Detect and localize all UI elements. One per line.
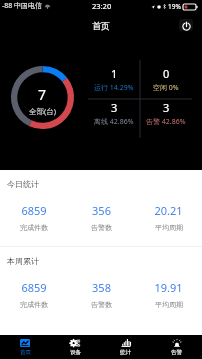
staticText: 空闲 0% — [153, 83, 179, 93]
staticText: 1 — [111, 66, 118, 81]
staticText: 356 — [92, 203, 111, 218]
button[interactable]: 0 — [140, 61, 192, 98]
staticText: 3 — [163, 100, 170, 115]
staticText: 6859 — [21, 203, 47, 218]
button[interactable]: 3 — [88, 97, 140, 130]
staticText: 3 — [111, 100, 118, 115]
staticText: 完成件数 — [20, 223, 48, 232]
staticText: 告警数 — [91, 300, 112, 309]
button[interactable]: 356 — [68, 203, 135, 232]
staticText: 统计 — [120, 349, 131, 356]
staticText: 离线 42.86% — [94, 117, 134, 127]
staticText: 全部(台) — [29, 106, 56, 116]
staticText: 6859 — [21, 280, 47, 295]
staticText: 首页 — [92, 20, 110, 31]
button[interactable]: 首页 — [0, 335, 50, 359]
staticText: 0 — [163, 66, 170, 81]
button[interactable]: 6859 — [0, 203, 68, 232]
staticText: 23:20 — [92, 1, 112, 11]
button[interactable]: 1 — [88, 61, 140, 98]
button[interactable]: Power — [179, 19, 193, 31]
staticText: 告警数 — [91, 223, 112, 232]
staticText: 今日统计 — [7, 179, 39, 189]
button[interactable]: 19.91 — [135, 280, 202, 309]
staticText: 告警 42.86% — [146, 117, 186, 127]
staticText: 本周累计 — [7, 256, 39, 266]
button[interactable]: 358 — [68, 280, 135, 309]
staticText: 首页 — [20, 349, 31, 356]
button[interactable]: 3 — [140, 97, 192, 130]
staticText: 19.91 — [154, 280, 183, 295]
button[interactable]: 设备 — [50, 335, 100, 359]
staticText: 设备 — [70, 349, 81, 356]
button[interactable]: 统计 — [100, 335, 151, 359]
staticText: 7 — [38, 85, 47, 104]
staticText: 告警 — [171, 349, 182, 356]
button[interactable]: 20.21 — [135, 203, 202, 232]
staticText: 平均周期 — [155, 300, 183, 309]
staticText: 19% — [168, 2, 181, 11]
staticText: -88 中国电信 — [2, 1, 43, 11]
staticText: 358 — [92, 280, 111, 295]
staticText: 20.21 — [154, 203, 183, 218]
staticText: 运行 14.29% — [94, 83, 134, 93]
button[interactable]: 告警 — [151, 335, 202, 359]
staticText: 完成件数 — [20, 300, 48, 309]
staticText: 平均周期 — [155, 223, 183, 232]
button[interactable]: 6859 — [0, 280, 68, 309]
